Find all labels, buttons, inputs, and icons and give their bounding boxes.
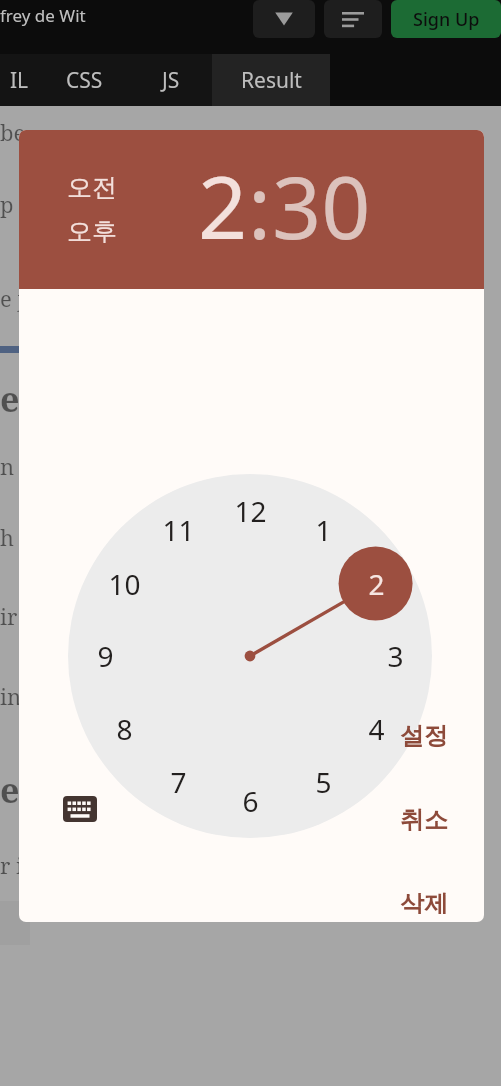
staticText: 2 xyxy=(198,147,248,264)
button[interactable]: JS xyxy=(130,54,212,106)
button[interactable]: IL xyxy=(0,54,38,106)
staticText: Sign Up xyxy=(413,7,480,32)
button[interactable]: Result xyxy=(212,54,330,106)
staticText: JS xyxy=(162,66,180,95)
button[interactable]: 삭제 xyxy=(386,881,462,922)
staticText: 10 xyxy=(108,565,141,603)
button[interactable]: CSS xyxy=(38,54,130,106)
staticText: 30 xyxy=(272,147,371,264)
staticText: Result xyxy=(241,66,302,95)
staticText: 3 xyxy=(387,637,404,675)
staticText: 4 xyxy=(368,710,385,748)
staticText: IL xyxy=(10,66,29,95)
button[interactable]: 오전 xyxy=(65,170,119,205)
button[interactable]: 2 xyxy=(198,147,248,264)
button[interactable]: Switch to text input xyxy=(51,785,109,833)
button[interactable]: 7 xyxy=(151,760,205,804)
staticText: 7 xyxy=(170,763,187,801)
staticText: p xyxy=(0,189,14,219)
staticText: : xyxy=(248,147,272,264)
staticText: 6 xyxy=(242,782,259,820)
staticText: e xyxy=(0,376,20,422)
staticText: be xyxy=(0,117,26,147)
staticText: 오후 xyxy=(67,216,117,247)
button[interactable]: 4 xyxy=(349,707,403,751)
staticText: frey de Wit xyxy=(0,4,86,27)
staticText: 취소 xyxy=(400,805,448,835)
button[interactable]: 11 xyxy=(151,508,205,552)
button[interactable]: 30 xyxy=(272,147,371,264)
staticText: e j xyxy=(0,283,25,313)
staticText: 12 xyxy=(234,492,267,530)
staticText: CSS xyxy=(66,66,103,95)
button[interactable]: 6 xyxy=(223,779,277,823)
button[interactable]: Sign Up xyxy=(391,0,501,38)
staticText: 11 xyxy=(162,511,195,549)
button[interactable]: 9 xyxy=(78,634,132,678)
staticText: 5 xyxy=(315,763,332,801)
button[interactable]: 1 xyxy=(296,508,350,552)
button[interactable]: 12 xyxy=(223,489,277,533)
button[interactable]: 8 xyxy=(97,707,151,751)
staticText: in xyxy=(0,681,22,711)
staticText: 설정 xyxy=(400,721,448,751)
button[interactable]: Menu xyxy=(324,0,382,38)
button[interactable]: 설정 xyxy=(386,713,462,759)
staticText: 9 xyxy=(97,637,114,675)
button[interactable]: 취소 xyxy=(386,797,462,843)
button[interactable]: 10 xyxy=(97,562,151,606)
button[interactable]: 5 xyxy=(296,760,350,804)
staticText: 2 xyxy=(368,565,385,603)
button[interactable]: 2 xyxy=(349,562,403,606)
button[interactable]: Expand xyxy=(253,0,315,38)
staticText: h xyxy=(0,522,14,552)
staticText: 삭제 xyxy=(400,889,448,914)
staticText: 1 xyxy=(315,511,332,549)
button[interactable]: 오후 xyxy=(65,214,119,249)
staticText: 오전 xyxy=(67,172,117,203)
staticText: 8 xyxy=(116,710,133,748)
button[interactable]: 3 xyxy=(368,634,422,678)
staticText: ir xyxy=(0,601,18,631)
staticText: r input: xyxy=(0,850,79,880)
staticText: n xyxy=(0,451,15,481)
staticText: er xyxy=(0,767,38,813)
